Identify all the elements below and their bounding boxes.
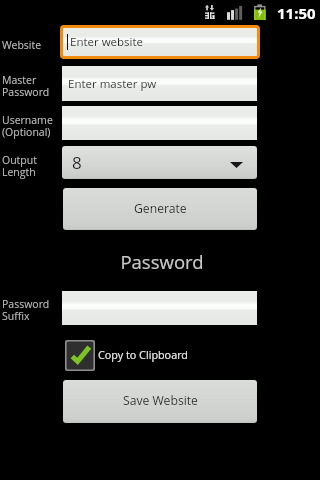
staticText: Username (Optional) (2, 113, 53, 139)
button[interactable]: Enter website (60, 25, 260, 59)
button[interactable]: Enter master pw (62, 66, 257, 101)
staticText: Master Password (2, 73, 50, 99)
staticText: 11:50 (277, 3, 316, 23)
staticText: Output Length (2, 153, 37, 179)
staticText: Copy to Clipboard (98, 347, 188, 362)
button[interactable] (62, 106, 257, 140)
staticText: Password (120, 249, 204, 274)
button[interactable]: Save Website (63, 380, 257, 423)
staticText: Website (2, 38, 42, 52)
button[interactable]: Copy to Clipboard (65, 340, 188, 371)
staticText: Save Website (123, 392, 198, 409)
staticText: Password Suffix (2, 297, 50, 323)
button[interactable]: Generate (63, 188, 257, 230)
button[interactable] (62, 291, 257, 325)
staticText: 8 (72, 151, 82, 174)
staticText: Generate (134, 200, 187, 217)
staticText: Enter website (70, 34, 143, 50)
staticText: Enter master pw (68, 76, 157, 92)
button[interactable]: 8 (62, 146, 257, 179)
